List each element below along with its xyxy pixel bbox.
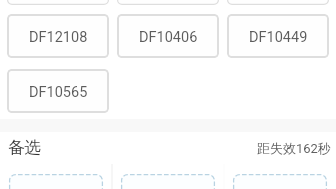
- button[interactable]: DF10406: [117, 14, 219, 58]
- button[interactable]: DF12108: [7, 14, 109, 58]
- staticText: DF12108: [29, 29, 88, 46]
- button[interactable]: 添加备选号码: [0, 162, 112, 189]
- button[interactable]: 添加备选号码: [112, 162, 224, 189]
- staticText: DF10565: [29, 84, 88, 101]
- button[interactable]: DF10565: [7, 69, 109, 113]
- staticText: DF10449: [249, 29, 308, 46]
- staticText: 备选: [8, 137, 41, 158]
- button[interactable]: DF10449: [227, 14, 329, 58]
- staticText: 距失效162秒: [257, 140, 331, 156]
- staticText: DF10406: [139, 29, 198, 46]
- button[interactable]: 添加备选号码: [224, 162, 336, 189]
